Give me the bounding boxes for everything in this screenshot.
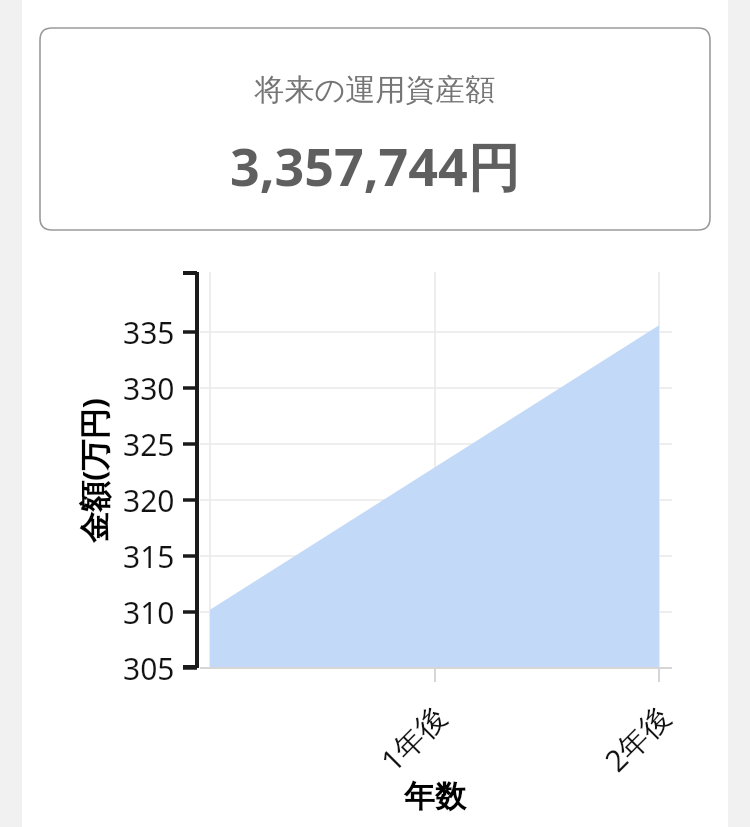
button[interactable]: 将来の運用資産額チャート: [0, 0, 750, 827]
